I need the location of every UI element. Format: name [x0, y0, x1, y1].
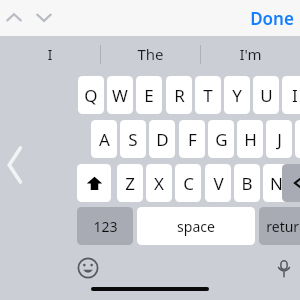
- staticText: Z: [125, 172, 135, 195]
- button[interactable]: B: [234, 164, 260, 202]
- staticText: I: [47, 44, 53, 64]
- staticText: Y: [232, 84, 242, 107]
- button[interactable]: The: [101, 38, 200, 70]
- button[interactable]: I: [282, 76, 300, 114]
- staticText: T: [203, 84, 213, 107]
- staticText: A: [99, 128, 110, 151]
- staticText: N: [270, 172, 283, 195]
- button[interactable]: J: [266, 120, 292, 158]
- staticText: The: [137, 44, 164, 64]
- button[interactable]: Z: [117, 164, 143, 202]
- button[interactable]: Next field: [32, 6, 56, 30]
- staticText: Done: [250, 7, 294, 30]
- button[interactable]: return: [259, 207, 300, 245]
- button[interactable]: D: [149, 120, 175, 158]
- staticText: S: [128, 128, 138, 151]
- button[interactable]: T: [195, 76, 221, 114]
- button[interactable]: M: [292, 164, 300, 202]
- staticText: I'm: [239, 44, 262, 64]
- staticText: W: [112, 84, 128, 107]
- staticText: space: [177, 217, 215, 236]
- button[interactable]: W: [107, 76, 133, 114]
- staticText: R: [174, 84, 185, 107]
- button[interactable]: 123: [77, 207, 133, 245]
- button[interactable]: N: [263, 164, 289, 202]
- staticText: H: [244, 128, 257, 151]
- button[interactable]: Dictation: [272, 256, 296, 280]
- button[interactable]: X: [146, 164, 172, 202]
- staticText: X: [154, 172, 164, 195]
- staticText: E: [144, 84, 154, 107]
- staticText: J: [277, 128, 282, 151]
- button[interactable]: Done: [244, 3, 300, 34]
- staticText: D: [156, 128, 169, 151]
- staticText: U: [260, 84, 273, 107]
- button[interactable]: Emoji: [76, 256, 100, 280]
- staticText: 123: [93, 217, 118, 236]
- button[interactable]: Delete: [282, 164, 300, 202]
- staticText: return: [266, 217, 300, 236]
- button[interactable]: U: [253, 76, 279, 114]
- button[interactable]: A: [91, 120, 117, 158]
- button[interactable]: Previous field: [2, 6, 26, 30]
- staticText: Q: [84, 84, 98, 107]
- button[interactable]: E: [136, 76, 162, 114]
- staticText: G: [215, 128, 228, 151]
- staticText: V: [213, 172, 224, 195]
- button[interactable]: I: [0, 38, 100, 70]
- button[interactable]: F: [179, 120, 205, 158]
- button[interactable]: C: [175, 164, 201, 202]
- button[interactable]: R: [166, 76, 192, 114]
- button[interactable]: K: [295, 120, 300, 158]
- button[interactable]: I'm: [201, 38, 300, 70]
- button[interactable]: H: [237, 120, 263, 158]
- button[interactable]: space: [137, 207, 255, 245]
- button[interactable]: Q: [78, 76, 104, 114]
- staticText: I: [292, 84, 298, 107]
- staticText: B: [241, 172, 253, 195]
- staticText: C: [183, 172, 194, 195]
- button[interactable]: S: [120, 120, 146, 158]
- staticText: M: [297, 172, 300, 195]
- button[interactable]: G: [208, 120, 234, 158]
- staticText: F: [188, 128, 197, 151]
- button[interactable]: V: [205, 164, 231, 202]
- button[interactable]: Y: [224, 76, 250, 114]
- button[interactable]: Shift: [77, 164, 111, 202]
